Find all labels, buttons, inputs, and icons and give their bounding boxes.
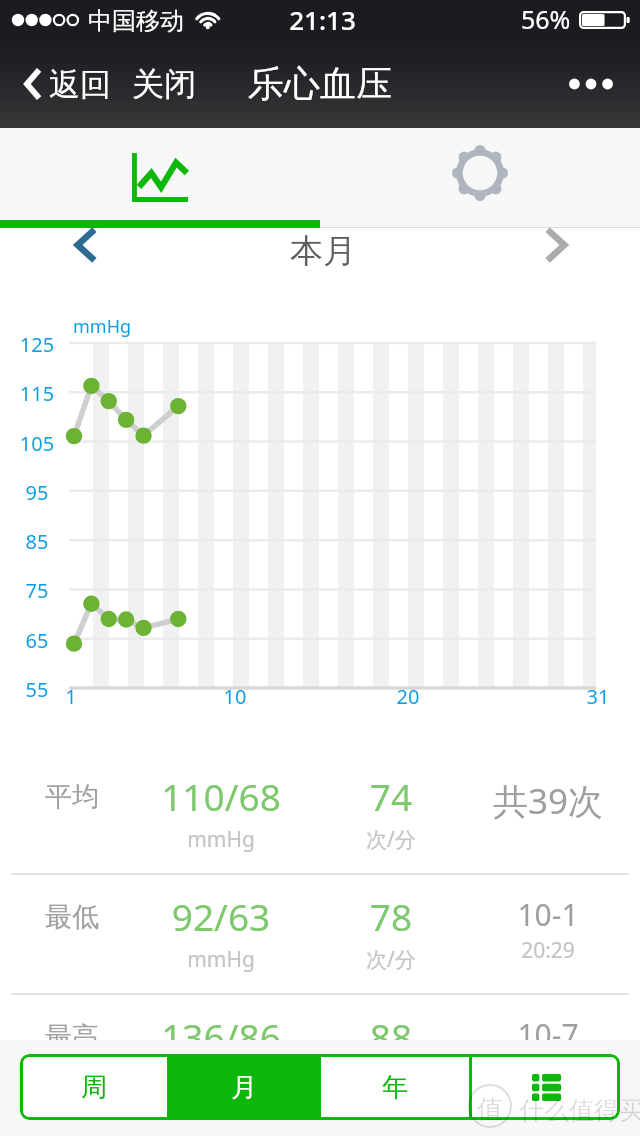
staticText: 31 [568, 683, 628, 710]
staticText: 什么值得买 [519, 1095, 640, 1126]
staticText: 136/86 [131, 1011, 311, 1061]
button[interactable]: 关闭 [126, 52, 202, 116]
staticText: 20:29 [458, 936, 638, 965]
staticText: mmHg [131, 1065, 311, 1094]
staticText: 中国移动 [88, 6, 184, 36]
staticText: 75 [14, 577, 60, 604]
staticText: mmHg [131, 825, 311, 854]
staticText: 次/分 [331, 945, 451, 974]
staticText: 125 [14, 331, 60, 358]
button[interactable]: Settings [320, 128, 640, 228]
staticText: 65 [14, 627, 60, 654]
staticText: 次/分 [331, 1065, 451, 1094]
button[interactable]: List view [472, 1054, 620, 1120]
button[interactable]: Previous month [50, 228, 122, 284]
staticText: 88 [331, 1011, 451, 1061]
staticText: 56% [521, 2, 571, 36]
staticText: 105 [14, 430, 60, 457]
button[interactable]: 平均 [0, 755, 640, 873]
staticText: 115 [14, 380, 60, 407]
button[interactable]: 年 [321, 1054, 469, 1120]
staticText: 最低 [16, 900, 128, 934]
staticText: 74 [331, 771, 451, 821]
staticText: 周 [81, 1071, 107, 1104]
staticText: 月 [231, 1071, 257, 1104]
button[interactable]: Next month [521, 228, 593, 284]
staticText: 110/68 [131, 771, 311, 821]
staticText: 10 [205, 683, 265, 710]
staticText: 次/分 [331, 825, 451, 854]
staticText: 共39次 [458, 777, 638, 825]
staticText: 95 [14, 479, 60, 506]
staticText: 年 [382, 1071, 408, 1104]
button[interactable]: Chart [0, 128, 320, 228]
staticText: 20 [378, 683, 438, 710]
button[interactable]: 最高 [0, 995, 640, 1113]
staticText: 1 [41, 683, 101, 710]
staticText: 21:13 [285, 2, 360, 37]
staticText: 10-7 [458, 1014, 638, 1055]
staticText: 返回 [49, 65, 111, 104]
staticText: mmHg [131, 945, 311, 974]
staticText: 关闭 [132, 64, 196, 104]
staticText: mmHg [73, 314, 132, 339]
staticText: 平均 [16, 780, 128, 814]
staticText: 值 [477, 1093, 503, 1126]
staticText: 21:00 [458, 1056, 638, 1085]
staticText: 92/63 [131, 891, 311, 941]
staticText: 乐心血压 [248, 61, 392, 106]
staticText: 本月 [260, 230, 386, 272]
button[interactable]: 周 [20, 1054, 167, 1120]
staticText: 55 [14, 676, 60, 703]
button[interactable]: 月 [170, 1054, 318, 1120]
staticText: 85 [14, 528, 60, 555]
staticText: 最高 [16, 1020, 128, 1054]
button[interactable]: More options [550, 54, 640, 114]
staticText: 10-1 [458, 894, 638, 935]
staticText: 78 [331, 891, 451, 941]
button[interactable]: 最低 [0, 875, 640, 993]
button[interactable]: 返回 [0, 52, 117, 116]
